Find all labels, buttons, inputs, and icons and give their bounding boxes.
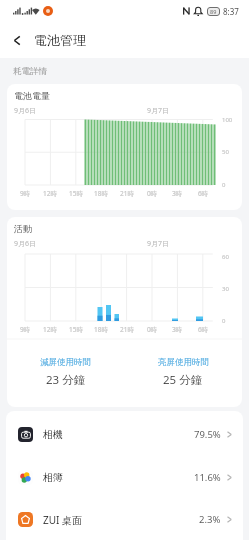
staticText: 18時 — [91, 325, 111, 334]
staticText: 相簿 — [43, 471, 63, 484]
staticText: ZUI 桌面 — [43, 513, 83, 527]
staticText: 0時 — [142, 189, 162, 198]
staticText: 9月7日 — [147, 239, 170, 249]
staticText: 0 — [222, 181, 238, 189]
staticText: 9月7日 — [147, 106, 170, 116]
staticText: 18時 — [91, 189, 111, 198]
staticText: 9時 — [15, 189, 35, 198]
staticText: 15時 — [66, 189, 86, 198]
button[interactable]: 減屏使用時間 — [7, 357, 124, 388]
staticText: 3時 — [167, 189, 187, 198]
staticText: 9月6日 — [14, 106, 37, 116]
staticText: 12時 — [40, 325, 60, 334]
staticText: 9時 — [15, 325, 35, 334]
staticText: 100 — [222, 116, 238, 124]
staticText: 6時 — [193, 325, 213, 334]
staticText: 耗電詳情 — [13, 66, 47, 77]
staticText: 60 — [222, 253, 238, 261]
staticText: 亮屏使用時間 — [158, 357, 209, 368]
button[interactable]: 亮屏使用時間 — [124, 357, 242, 388]
button[interactable]: ZUI 桌面 — [6, 499, 243, 540]
button[interactable]: 相簿 — [6, 456, 243, 499]
staticText: 2.3% — [199, 513, 221, 526]
staticText: 8:37 — [223, 6, 239, 17]
staticText: 11.6% — [194, 471, 221, 484]
staticText: 15時 — [66, 325, 86, 334]
staticText: 25 分鐘 — [163, 372, 203, 388]
staticText: 12時 — [40, 189, 60, 198]
staticText: 21時 — [117, 325, 137, 334]
staticText: 0 — [222, 317, 238, 325]
button[interactable] — [0, 22, 34, 58]
staticText: 50 — [222, 148, 238, 156]
staticText: 30 — [222, 285, 238, 293]
staticText: 21時 — [117, 189, 137, 198]
staticText: 活動 — [14, 223, 32, 234]
staticText: 23 分鐘 — [46, 372, 86, 388]
staticText: 9月6日 — [14, 239, 37, 249]
button[interactable]: 相機 — [6, 413, 243, 456]
staticText: 電池電量 — [14, 90, 50, 101]
staticText: 3時 — [167, 325, 187, 334]
staticText: 減屏使用時間 — [40, 357, 91, 368]
staticText: 6時 — [193, 189, 213, 198]
staticText: 79.5% — [194, 428, 221, 441]
staticText: 相機 — [43, 428, 63, 441]
staticText: 電池管理 — [34, 32, 86, 48]
staticText: 0時 — [142, 325, 162, 334]
staticText: 89 — [210, 8, 217, 15]
